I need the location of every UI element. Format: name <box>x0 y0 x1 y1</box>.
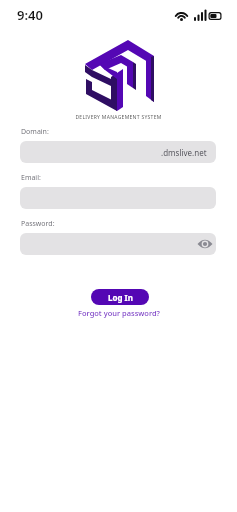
staticText: Email: <box>21 173 41 183</box>
button[interactable] <box>20 233 216 255</box>
staticText: Domain: <box>21 127 49 137</box>
staticText: 9:40 <box>17 6 43 24</box>
staticText: Password: <box>21 219 55 229</box>
staticText: .dmslive.net <box>161 147 207 158</box>
button[interactable]: Log In <box>91 289 149 305</box>
staticText: Log In <box>108 292 133 303</box>
button[interactable]: .dmslive.net <box>20 141 216 163</box>
button[interactable]: Forgot your password? <box>78 308 160 318</box>
staticText: DELIVERY MANAGEMENT SYSTEM <box>0 114 237 121</box>
